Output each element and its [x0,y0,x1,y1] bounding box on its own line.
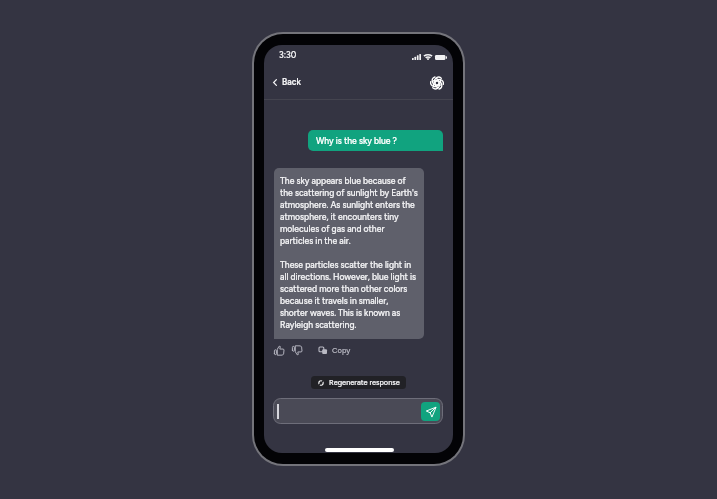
staticText: The sky appears blue because of the scat… [280,174,418,246]
button[interactable]: Back [271,74,303,90]
button[interactable]: Why is the sky blue ? [308,130,443,151]
staticText: These particles scatter the light in all… [280,258,418,330]
button[interactable]: The sky appears blue because of the scat… [274,168,424,339]
button[interactable]: Like [272,344,285,357]
button[interactable]: Copy [317,343,353,358]
button[interactable]: Regenerate response [311,376,406,389]
button[interactable]: Send [273,398,443,424]
staticText: 3:30 [279,50,297,60]
staticText: Regenerate response [329,378,400,387]
staticText: Back [282,77,301,87]
staticText: Copy [332,346,351,355]
button[interactable]: Dislike [290,344,303,357]
staticText: Why is the sky blue ? [316,136,397,146]
button[interactable]: OpenAI menu [428,74,446,92]
button[interactable]: Send [421,402,440,421]
